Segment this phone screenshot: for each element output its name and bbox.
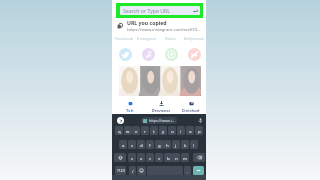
button[interactable]: j [172, 140, 180, 149]
button[interactable]: s [128, 140, 136, 149]
button[interactable]: y [159, 126, 167, 135]
button[interactable]: Tab [118, 97, 142, 112]
button[interactable]: Bollywood [182, 35, 206, 41]
staticText: URL you copied [127, 19, 167, 26]
button[interactable]: t [150, 126, 158, 135]
button[interactable]: / [129, 166, 136, 175]
button[interactable]: https://www.i... [143, 117, 175, 124]
staticText: f [149, 142, 151, 148]
button[interactable]: z [128, 153, 136, 162]
button[interactable]: c [146, 153, 154, 162]
staticText: Instagram [137, 36, 157, 41]
button[interactable]: More suggestions [117, 117, 124, 124]
staticText: Facebook [115, 36, 133, 41]
button[interactable]: Facebook [112, 35, 135, 41]
staticText: . [187, 168, 189, 174]
staticText: w [126, 128, 130, 134]
staticText: p [198, 128, 201, 134]
button[interactable]: WhatsApp [165, 48, 178, 61]
button[interactable]: Shift [114, 153, 126, 162]
button[interactable]: Mute [188, 48, 201, 61]
staticText: Bollywood [184, 36, 204, 41]
button[interactable]: i [177, 126, 185, 135]
button[interactable]: ?123 [115, 166, 126, 175]
staticText: l [193, 142, 195, 148]
button[interactable]: Backspace [193, 153, 205, 162]
button[interactable]: Progress [149, 97, 173, 112]
staticText: e [135, 128, 138, 134]
button[interactable]: d [137, 140, 145, 149]
staticText: s [131, 142, 134, 148]
staticText: u [171, 128, 174, 134]
staticText: m [183, 155, 188, 161]
button[interactable]: u [168, 126, 176, 135]
button[interactable]: p [195, 126, 203, 135]
button[interactable]: e [132, 126, 140, 135]
staticText: n [175, 155, 178, 161]
button[interactable] [119, 66, 201, 96]
button[interactable]: h [163, 140, 171, 149]
staticText: r [144, 128, 146, 134]
button[interactable]: Enter [193, 166, 204, 175]
button[interactable]: o [186, 126, 194, 135]
staticText: x [140, 155, 143, 161]
staticText: o [189, 128, 192, 134]
staticText: / [132, 168, 134, 174]
staticText: z [131, 155, 134, 161]
staticText: ?123 [117, 168, 125, 173]
button[interactable]: f [146, 140, 154, 149]
staticText: Finished [182, 108, 200, 112]
button[interactable]: r [141, 126, 149, 135]
button[interactable]: n [172, 153, 180, 162]
button[interactable]: Music [142, 48, 155, 61]
staticText: Progress [152, 108, 171, 112]
button[interactable]: b [164, 153, 172, 162]
button[interactable]: URL you copied [112, 19, 206, 32]
button[interactable]: Search or Type URL [120, 6, 200, 15]
button[interactable]: l [190, 140, 198, 149]
button[interactable]: . [184, 166, 191, 175]
staticText: Video [165, 36, 176, 41]
button[interactable]: Instagram [135, 35, 158, 41]
button[interactable]: Emoji [137, 166, 146, 175]
button[interactable]: w [124, 126, 132, 135]
staticText: https://www.i... [149, 118, 175, 123]
staticText: i [180, 128, 182, 134]
staticText: b [167, 155, 170, 161]
staticText: Tab [126, 108, 134, 112]
button[interactable]: a [119, 140, 127, 149]
staticText: Search or Type URL [123, 7, 171, 14]
button[interactable]: q [115, 126, 123, 135]
staticText: g [158, 142, 161, 148]
button[interactable]: m [181, 153, 189, 162]
staticText: h [166, 142, 169, 148]
button[interactable]: x [137, 153, 145, 162]
button[interactable]: Video [158, 35, 182, 41]
staticText: y [162, 128, 165, 134]
staticText: v [158, 155, 161, 161]
staticText: d [140, 142, 143, 148]
staticText: t [153, 128, 155, 134]
button[interactable]: k [181, 140, 189, 149]
staticText: a [122, 142, 125, 148]
button[interactable]: Twitter [119, 48, 132, 61]
staticText: q [118, 128, 121, 134]
button[interactable]: g [155, 140, 163, 149]
button[interactable]: Voice input [196, 116, 204, 124]
staticText: https://www.instagram.com/reel/CS... [127, 27, 201, 32]
button[interactable]: Finished [179, 97, 203, 112]
staticText: j [175, 142, 177, 148]
staticText: c [149, 155, 152, 161]
button[interactable]: v [155, 153, 163, 162]
staticText: k [184, 142, 187, 148]
